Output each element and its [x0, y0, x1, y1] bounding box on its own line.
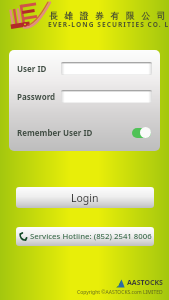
staticText: Copyright ©AASTOCKS.com LIMITED: [77, 289, 163, 296]
staticText: Services Hotline: (852) 2541 8006: [30, 231, 152, 242]
staticText: Password: [17, 91, 56, 102]
button[interactable]: Services Hotline: (852) 2541 8006: [16, 227, 154, 246]
button[interactable]: [61, 90, 152, 103]
staticText: AASTOCKS: [127, 278, 163, 288]
button[interactable]: [61, 62, 152, 75]
staticText: 長雄證券有限公司: [49, 11, 169, 22]
button[interactable]: Remember User ID: [132, 127, 151, 138]
staticText: EVER-LONG SECURITIES CO. LTD: [48, 20, 169, 29]
button[interactable]: Remember User ID: [9, 120, 160, 144]
staticText: User ID: [17, 63, 47, 74]
button[interactable]: Login: [16, 187, 154, 208]
staticText: Remember User ID: [17, 127, 93, 138]
staticText: Login: [71, 191, 99, 205]
